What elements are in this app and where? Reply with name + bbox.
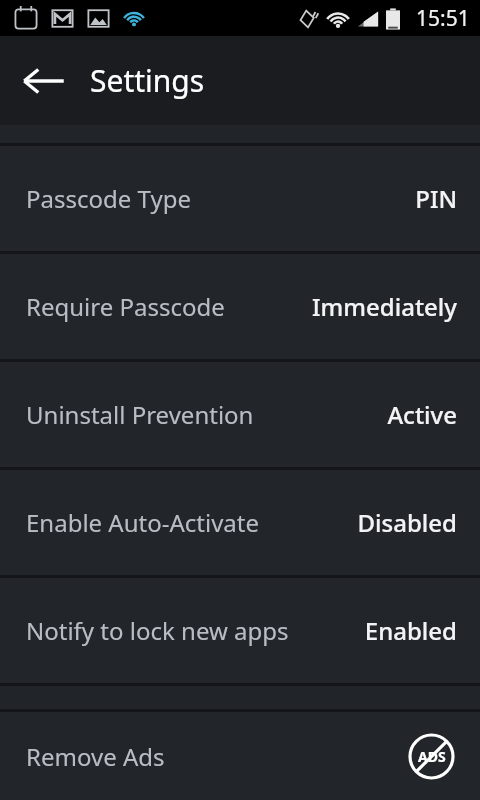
button[interactable]: Notify to lock new apps bbox=[0, 578, 480, 683]
staticText: Enabled bbox=[364, 614, 457, 647]
staticText: Settings bbox=[90, 60, 205, 101]
staticText: Remove Ads bbox=[26, 740, 165, 773]
staticText: Require Passcode bbox=[26, 290, 225, 323]
staticText: Passcode Type bbox=[26, 182, 191, 215]
staticText: 15:51 bbox=[416, 4, 470, 33]
button[interactable]: Remove Ads bbox=[0, 712, 480, 800]
staticText: Active bbox=[387, 398, 457, 431]
staticText: PIN bbox=[415, 182, 457, 215]
button[interactable]: Require Passcode bbox=[0, 254, 480, 359]
staticText: Immediately bbox=[312, 290, 457, 323]
button[interactable]: Passcode Type bbox=[0, 146, 480, 251]
staticText: ADS bbox=[418, 747, 446, 766]
staticText: Uninstall Prevention bbox=[26, 398, 254, 431]
button[interactable]: Uninstall Prevention bbox=[0, 362, 480, 467]
button[interactable]: Enable Auto-Activate bbox=[0, 470, 480, 575]
staticText: Disabled bbox=[357, 506, 457, 539]
staticText: Enable Auto-Activate bbox=[26, 506, 260, 539]
staticText: Notify to lock new apps bbox=[26, 614, 289, 647]
button[interactable]: Back bbox=[18, 55, 70, 107]
